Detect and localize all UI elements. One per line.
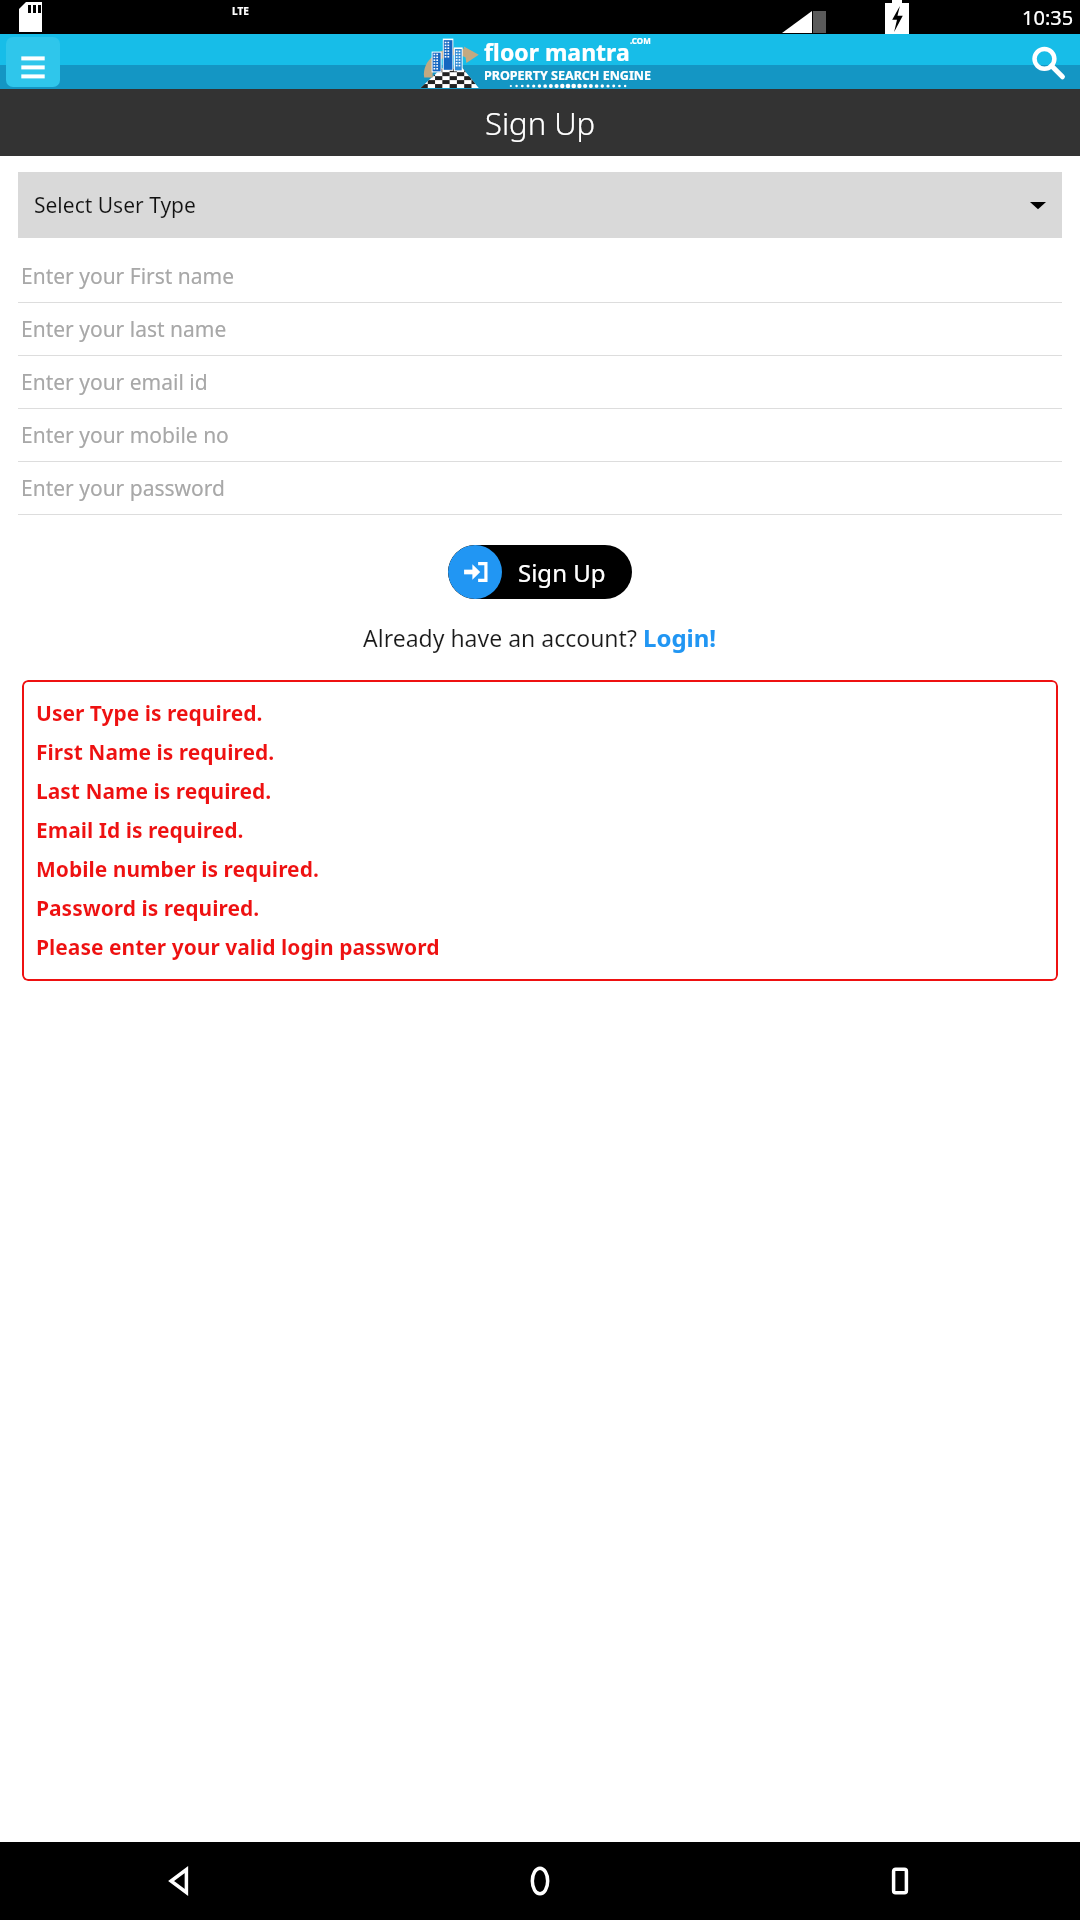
staticText: Enter your mobile no [21, 421, 229, 450]
staticText: User Type is required. [36, 699, 263, 728]
staticText: Sign Up [518, 556, 606, 589]
staticText: Enter your email id [21, 368, 208, 397]
staticText: Enter your last name [21, 315, 227, 344]
staticText: First Name is required. [36, 738, 275, 767]
staticText: Last Name is required. [36, 777, 272, 806]
button[interactable]: Enter your mobile no [18, 409, 1062, 462]
staticText: Enter your First name [21, 262, 235, 291]
staticText: Please enter your valid login password [36, 933, 440, 962]
staticText: LTE [232, 4, 249, 18]
staticText: .COM [630, 35, 651, 46]
staticText: Enter your password [21, 474, 225, 503]
button[interactable]: Home [360, 1842, 720, 1920]
button[interactable]: Back [0, 1842, 360, 1920]
button[interactable]: Sign Up [448, 545, 632, 599]
button[interactable]: Enter your First name [18, 250, 1062, 303]
staticText: floor mantra [484, 36, 630, 67]
staticText: Email Id is required. [36, 816, 244, 845]
button[interactable]: Login! [643, 621, 717, 654]
button[interactable]: Select User Type [18, 172, 1062, 238]
button[interactable]: Search [1024, 39, 1070, 85]
button[interactable]: Enter your email id [18, 356, 1062, 409]
staticText: 10:35 [1022, 4, 1074, 31]
button[interactable]: Menu [6, 37, 60, 87]
staticText: Select User Type [34, 191, 196, 220]
button[interactable]: Enter your password [18, 462, 1062, 515]
staticText: PROPERTY SEARCH ENGINE [484, 67, 651, 84]
staticText: Login! [643, 621, 717, 654]
staticText: Already have an account? [363, 622, 643, 653]
staticText: Password is required. [36, 894, 260, 923]
staticText: Sign Up [485, 102, 596, 144]
button[interactable]: Enter your last name [18, 303, 1062, 356]
staticText: Mobile number is required. [36, 855, 319, 884]
button[interactable]: Recent apps [720, 1842, 1080, 1920]
